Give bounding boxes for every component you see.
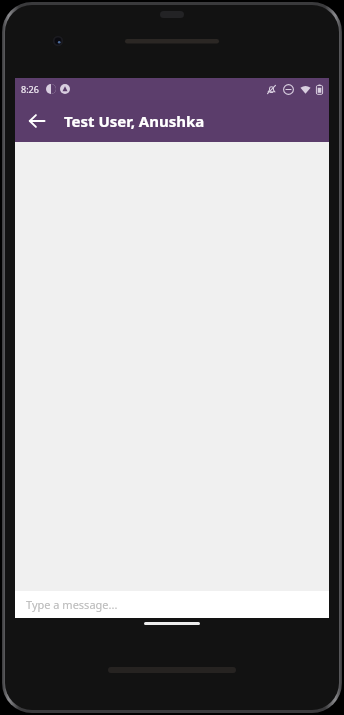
button[interactable]: Navigate up [19, 103, 55, 139]
staticText: Type a message... [26, 597, 118, 612]
button[interactable]: Type a message... [15, 591, 329, 618]
staticText: 8:26 [21, 83, 39, 95]
staticText: Test User, Anushka [64, 111, 205, 131]
